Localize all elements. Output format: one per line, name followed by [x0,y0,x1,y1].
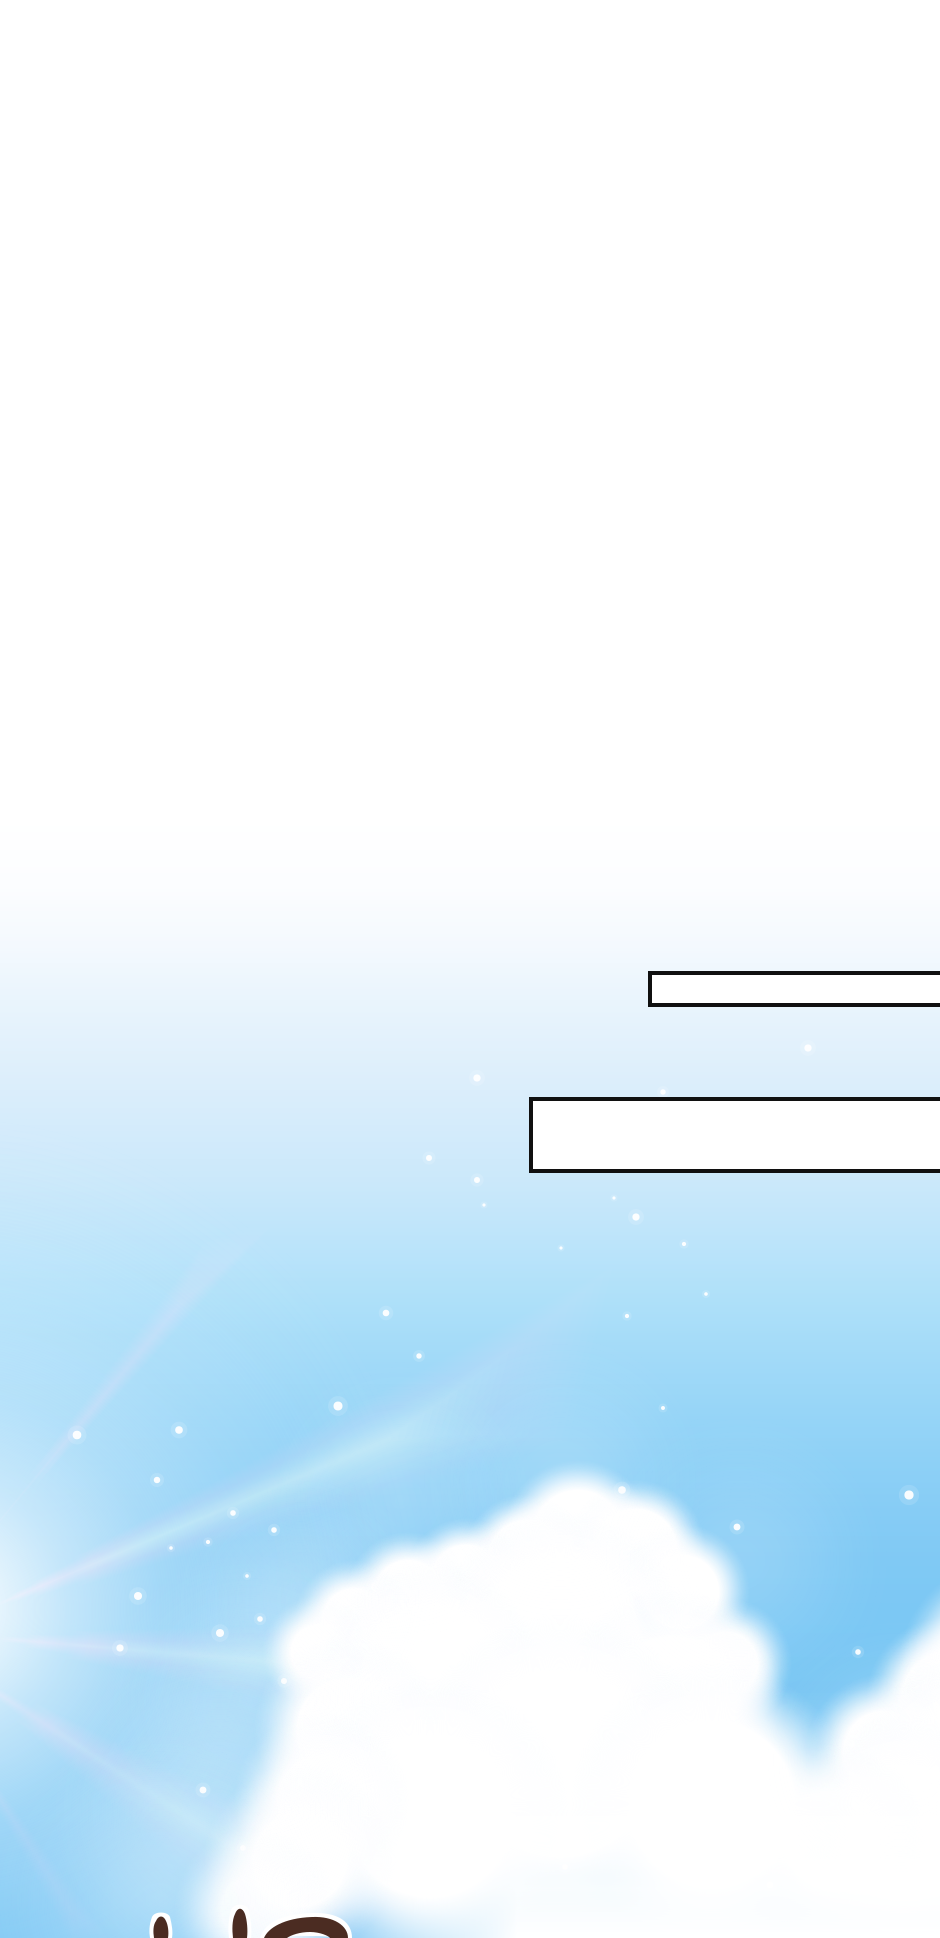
button[interactable]: Dialogue [0,0,940,1938]
button[interactable]: Dialogue [0,0,940,1938]
